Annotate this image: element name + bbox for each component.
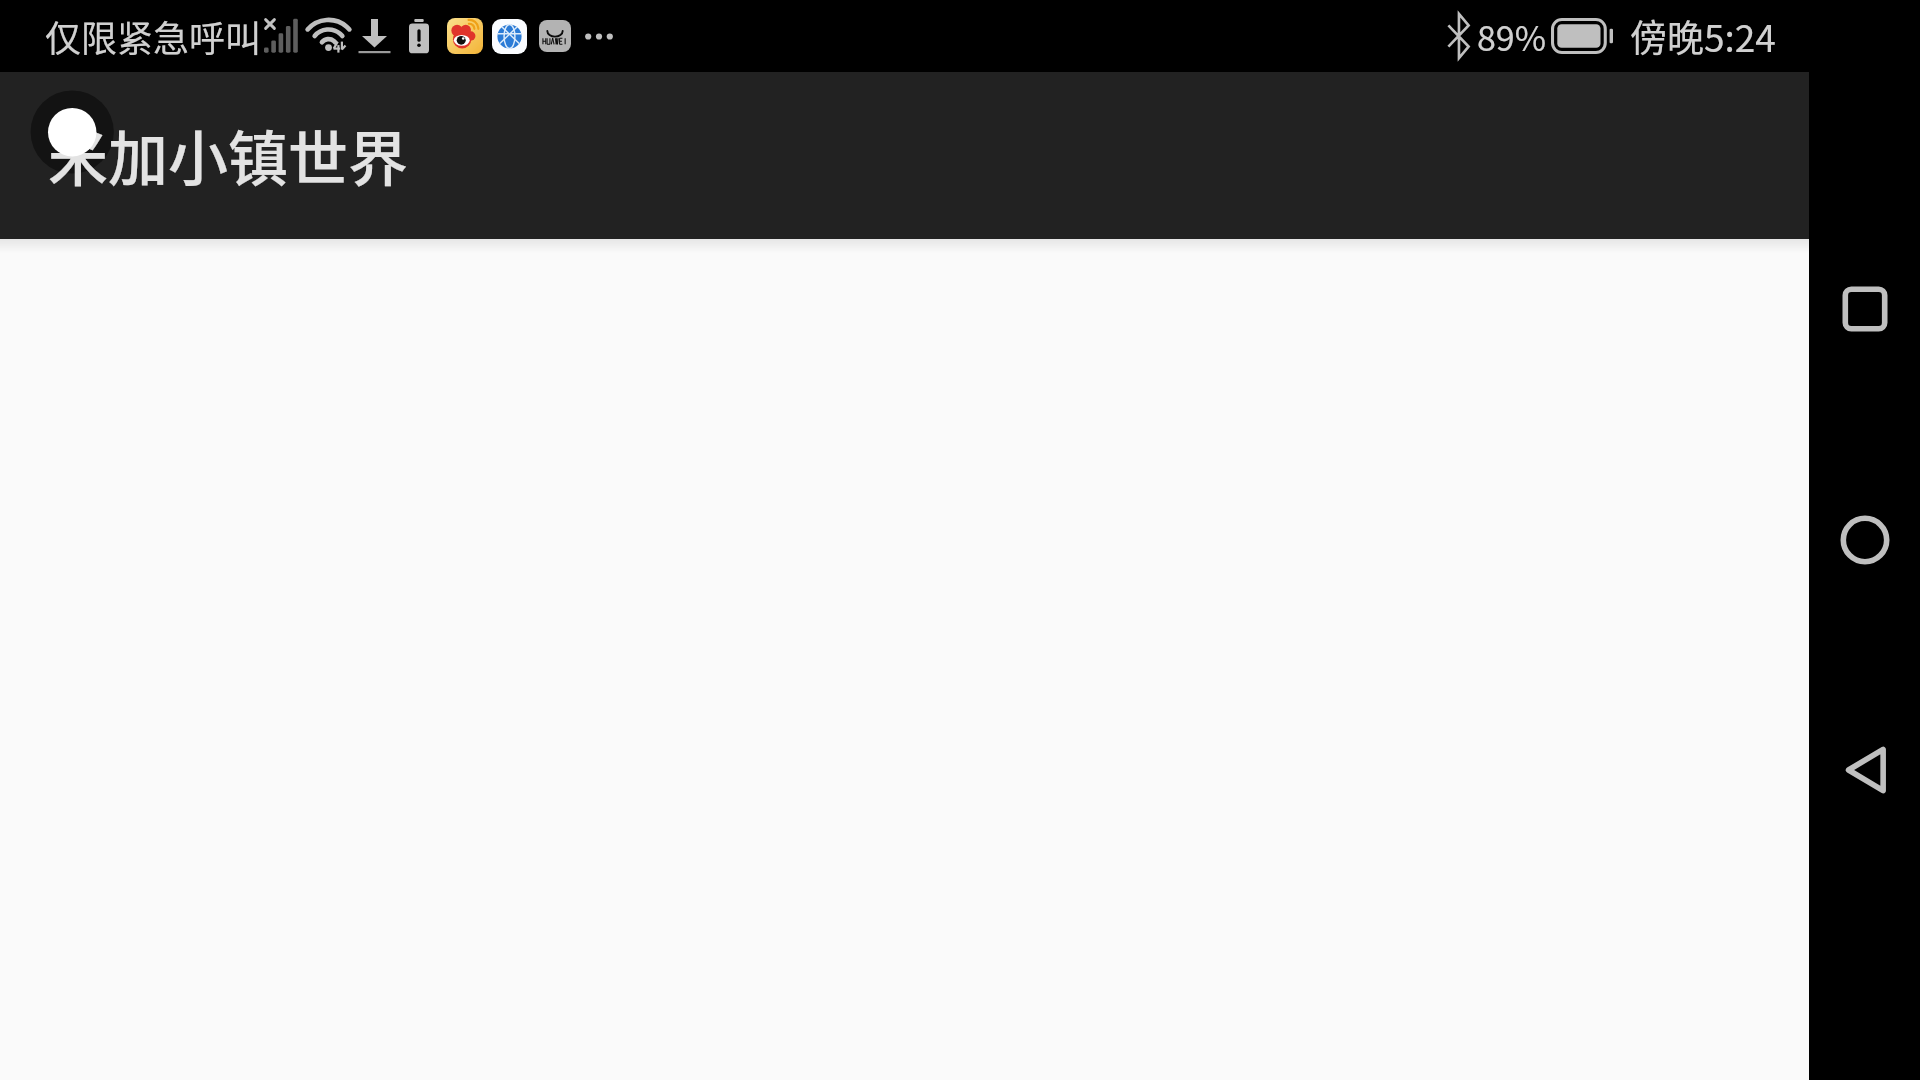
staticText: 米加小镇世界	[48, 111, 408, 198]
button[interactable]: Back	[1809, 700, 1920, 839]
button[interactable]: Recents	[1809, 239, 1920, 378]
button[interactable]: Home	[1809, 470, 1920, 609]
staticText: 傍晚5:24	[1630, 9, 1776, 63]
staticText: 89%	[1477, 12, 1547, 61]
staticText: 仅限紧急呼叫	[45, 10, 262, 62]
